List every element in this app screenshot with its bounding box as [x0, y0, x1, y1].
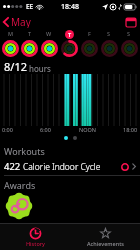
button[interactable]: Award badge [6, 193, 32, 219]
staticText: 8/12 [4, 59, 27, 74]
staticText: T [68, 31, 72, 38]
staticText: History [26, 240, 45, 247]
button[interactable] [0, 74, 140, 126]
staticText: S [107, 30, 111, 37]
button[interactable]: May [0, 13, 35, 30]
staticText: May [11, 15, 31, 28]
staticText: 6:00 [40, 126, 51, 133]
staticText: 18:00 [123, 126, 138, 133]
staticText: F [88, 30, 91, 37]
staticText: NOON [79, 126, 96, 133]
button[interactable] [119, 40, 139, 57]
button[interactable]: Achievements [70, 224, 140, 250]
staticText: 422 [4, 160, 21, 173]
button[interactable]: Calendar [126, 17, 140, 27]
staticText: Achievements [87, 240, 124, 247]
button[interactable] [99, 40, 119, 57]
button[interactable]: 422 [0, 158, 140, 175]
staticText: T [28, 30, 32, 37]
button[interactable] [79, 40, 99, 57]
button[interactable] [20, 40, 39, 57]
button[interactable] [59, 40, 79, 57]
staticText: M [8, 30, 14, 37]
staticText: Calorie Indoor Cycle [23, 161, 101, 173]
staticText: hours [29, 63, 51, 74]
button[interactable]: History [0, 224, 70, 250]
staticText: S [127, 30, 131, 37]
staticText: 18:48 [61, 2, 79, 12]
staticText: 0:00 [2, 126, 13, 133]
button[interactable] [39, 40, 59, 57]
staticText: W [46, 30, 52, 37]
staticText: Workouts [4, 145, 45, 157]
staticText: Awards [4, 179, 36, 191]
button[interactable] [1, 40, 20, 57]
staticText: EE [26, 2, 34, 11]
